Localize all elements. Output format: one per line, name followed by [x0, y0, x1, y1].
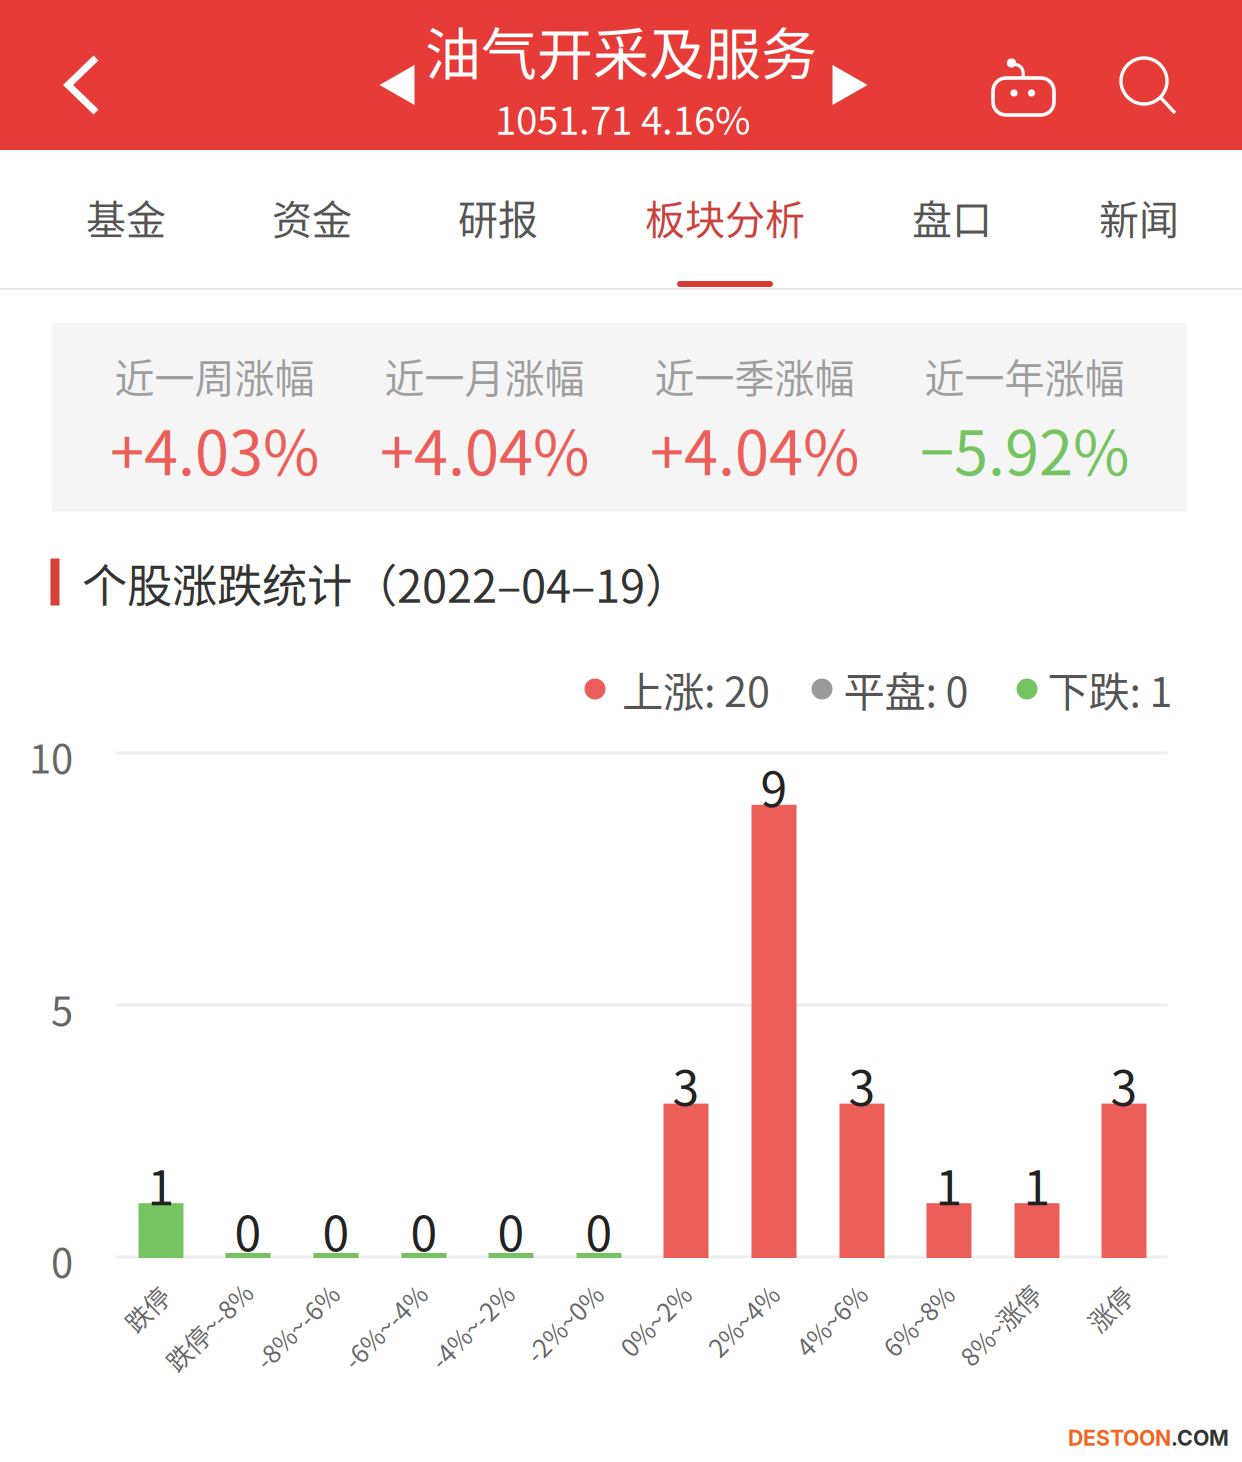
staticText: 1: [935, 1149, 962, 1219]
staticText: 5: [51, 979, 73, 1037]
button[interactable]: Back: [0, 10, 169, 160]
staticText: +4.04%: [380, 404, 589, 493]
staticText: 0: [322, 1195, 349, 1265]
staticText: +4.03%: [110, 404, 319, 493]
staticText: 平盘: 0: [843, 659, 968, 719]
staticText: 0: [51, 1231, 73, 1289]
staticText: 6%~8%: [874, 1302, 962, 1339]
staticText: 0: [497, 1195, 524, 1265]
staticText: 0%~2%: [611, 1302, 699, 1339]
staticText: 近一月涨幅: [384, 346, 584, 404]
staticText: 8%~涨停: [949, 1307, 1050, 1343]
staticText: 涨停: [1084, 1290, 1134, 1327]
button[interactable]: 新闻: [1054, 150, 1224, 290]
staticText: .COM: [1171, 1425, 1229, 1451]
staticText: DESTOON: [1068, 1425, 1171, 1451]
staticText: 近一季涨幅: [654, 346, 854, 404]
staticText: 3: [672, 1050, 699, 1119]
staticText: 资金: [272, 188, 352, 246]
staticText: 基金: [86, 188, 166, 246]
staticText: 个股涨跌统计（2022–04–19）: [82, 550, 690, 616]
staticText: 0: [410, 1195, 437, 1265]
staticText: 盘口: [912, 188, 992, 246]
button[interactable]: Assistant: [963, 12, 1083, 162]
staticText: 下跌: 1: [1047, 659, 1172, 719]
staticText: 3: [848, 1050, 875, 1119]
staticText: 10: [29, 727, 73, 785]
button[interactable]: 基金: [41, 150, 211, 290]
staticText: 跌停: [121, 1290, 171, 1327]
staticText: -4%~-2%: [419, 1308, 525, 1345]
staticText: 新闻: [1099, 188, 1179, 246]
button[interactable]: Next: [807, 10, 893, 160]
staticText: -8%~-6%: [244, 1308, 350, 1345]
staticText: 1: [147, 1149, 174, 1219]
staticText: 1051.71 4.16%: [495, 90, 751, 146]
staticText: 近一周涨幅: [114, 346, 314, 404]
staticText: −5.92%: [920, 404, 1129, 493]
staticText: 3: [1110, 1050, 1137, 1119]
button[interactable]: 盘口: [867, 150, 1037, 290]
button[interactable]: 研报: [413, 150, 583, 290]
staticText: 近一年涨幅: [924, 346, 1124, 404]
staticText: 上涨: 20: [622, 659, 770, 719]
staticText: 0: [585, 1195, 612, 1265]
button[interactable]: Previous: [354, 10, 440, 160]
button[interactable]: 资金: [227, 150, 397, 290]
staticText: 跌停~-8%: [154, 1308, 264, 1345]
staticText: 4%~6%: [787, 1302, 875, 1339]
button[interactable]: 板块分析: [620, 150, 830, 290]
staticText: -2%~0%: [515, 1305, 612, 1342]
staticText: -6%~-4%: [332, 1308, 438, 1345]
staticText: +4.04%: [650, 404, 859, 493]
staticText: 研报: [458, 188, 538, 246]
staticText: 板块分析: [645, 188, 805, 246]
staticText: 油气开采及服务: [425, 9, 817, 91]
staticText: 1: [1023, 1149, 1050, 1219]
button[interactable]: Search: [1088, 10, 1208, 160]
staticText: 2%~4%: [699, 1302, 787, 1339]
staticText: 9: [760, 751, 787, 820]
staticText: 0: [234, 1195, 261, 1265]
